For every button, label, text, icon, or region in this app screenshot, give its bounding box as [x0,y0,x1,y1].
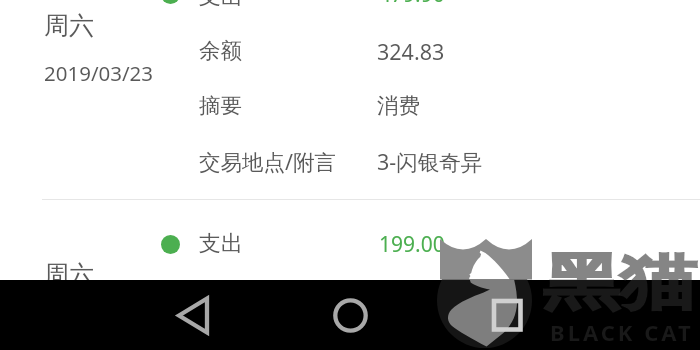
button[interactable]: Recent apps [470,280,542,350]
button[interactable]: 余额 [199,37,445,66]
button[interactable]: 摘要 [199,92,420,119]
staticText: 324.83 [377,37,445,66]
staticText: 支出 [199,230,243,258]
staticText: 2019/03/23 [44,59,154,87]
button[interactable]: 支出 [161,0,461,15]
staticText: 3-闪银奇异 [377,147,483,176]
staticText: 479.90 [379,0,445,9]
staticText: 交易地点/附言 [199,147,336,176]
staticText: 摘要 [199,92,242,119]
button[interactable]: 周六 [44,259,94,290]
button[interactable]: Back [158,280,230,350]
button[interactable]: 交易地点/附言 [199,147,483,176]
staticText: 周六 [44,10,94,41]
staticText: BLACK CAT [550,317,694,347]
staticText: 黑猫 [543,245,697,321]
button[interactable]: 支出 [161,226,461,262]
staticText: 支出 [199,0,243,11]
button[interactable]: Home [314,280,386,350]
staticText: 余额 [199,37,242,64]
staticText: 199.00 [379,230,445,259]
button[interactable]: 周六 [44,10,154,87]
staticText: 消费 [377,92,420,119]
staticText: 周六 [44,259,94,290]
